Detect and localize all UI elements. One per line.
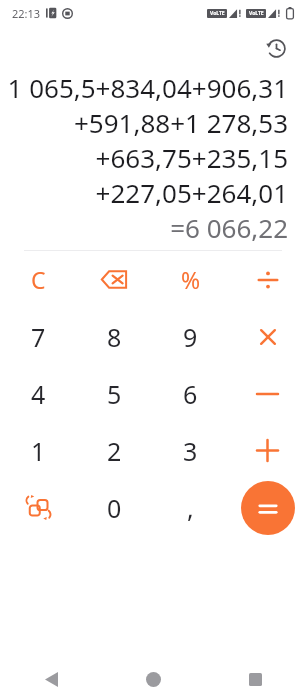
button[interactable]: 4 (0, 365, 76, 422)
button[interactable]: Divide (229, 251, 306, 308)
button[interactable]: C (0, 251, 76, 308)
staticText: 2 (107, 434, 122, 468)
button[interactable]: 5 (76, 365, 152, 422)
button[interactable]: 8 (76, 308, 152, 365)
button[interactable]: 9 (152, 308, 229, 365)
button[interactable]: 0 (76, 479, 152, 536)
staticText: 22:13 (12, 6, 41, 21)
staticText: 1 (31, 434, 46, 468)
button[interactable]: Plus (229, 422, 306, 479)
button[interactable]: 2 (76, 422, 152, 479)
staticText: +591,88+1 278,53 (73, 105, 288, 140)
staticText: =6 066,22 (170, 210, 288, 244)
staticText: , (187, 491, 194, 525)
staticText: +663,75+235,15 (95, 140, 288, 175)
staticText: 9 (183, 320, 198, 354)
staticText: +227,05+264,01 (95, 175, 288, 210)
button[interactable]: Equals (241, 481, 295, 535)
button[interactable]: Multiply (229, 308, 306, 365)
staticText: 1 065,5+834,04+906,31 (7, 70, 288, 105)
staticText: 6 (183, 377, 198, 411)
staticText: 8 (107, 320, 122, 354)
button[interactable]: , (152, 479, 229, 536)
button[interactable]: 1 (0, 422, 76, 479)
button[interactable]: History (256, 28, 296, 68)
button[interactable]: Minus (229, 365, 306, 422)
staticText: C (31, 264, 46, 295)
button[interactable]: Backspace (76, 251, 152, 308)
staticText: VoLTE (210, 10, 225, 17)
staticText: 7 (31, 320, 46, 354)
button[interactable]: Home (102, 658, 204, 700)
button[interactable]: 7 (0, 308, 76, 365)
staticText: 5 (107, 377, 122, 411)
staticText: VoLTE (249, 10, 264, 17)
button[interactable]: Unit converter (0, 479, 76, 536)
staticText: 3 (183, 434, 198, 468)
staticText: 0 (107, 491, 122, 525)
button[interactable]: 6 (152, 365, 229, 422)
button[interactable]: 3 (152, 422, 229, 479)
staticText: % (181, 264, 201, 295)
button[interactable]: Recents (204, 658, 306, 700)
staticText: 4 (31, 377, 46, 411)
button[interactable]: % (152, 251, 229, 308)
button[interactable]: Back (0, 658, 102, 700)
